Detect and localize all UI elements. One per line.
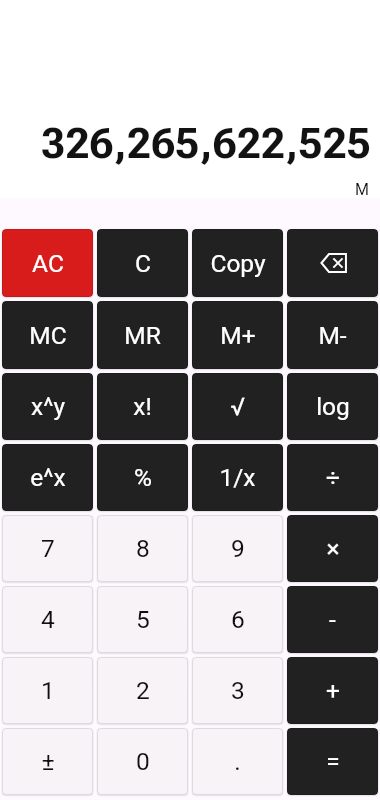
- button[interactable]: log: [287, 373, 378, 440]
- staticText: 8: [136, 534, 150, 563]
- button[interactable]: -: [287, 586, 378, 653]
- button[interactable]: ±: [2, 728, 93, 795]
- button[interactable]: MC: [2, 301, 93, 369]
- staticText: x!: [133, 392, 152, 421]
- button[interactable]: 3: [192, 657, 283, 724]
- staticText: %: [134, 463, 152, 492]
- staticText: 1/x: [219, 463, 256, 492]
- button[interactable]: 0: [97, 728, 188, 795]
- staticText: ±: [41, 747, 55, 776]
- staticText: 2: [136, 676, 150, 705]
- staticText: 0: [136, 747, 150, 776]
- button[interactable]: AC: [2, 229, 93, 297]
- staticText: 326,265,622,525: [0, 119, 371, 168]
- staticText: 7: [41, 534, 55, 563]
- button[interactable]: 2: [97, 657, 188, 724]
- staticText: .: [234, 747, 241, 776]
- button[interactable]: 7: [2, 515, 93, 582]
- button[interactable]: ÷: [287, 444, 378, 511]
- button[interactable]: =: [287, 728, 378, 795]
- staticText: ×: [326, 534, 340, 563]
- staticText: e^x: [30, 463, 66, 492]
- button[interactable]: Backspace: [287, 229, 378, 297]
- button[interactable]: 5: [97, 586, 188, 653]
- button[interactable]: +: [287, 657, 378, 724]
- staticText: Copy: [210, 249, 266, 278]
- staticText: M: [0, 180, 369, 199]
- button[interactable]: MR: [97, 301, 188, 369]
- staticText: M-: [318, 321, 347, 350]
- button[interactable]: Copy: [192, 229, 283, 297]
- button[interactable]: e^x: [2, 444, 93, 511]
- staticText: -: [329, 605, 336, 634]
- other: Backspace: [287, 229, 378, 297]
- staticText: log: [316, 392, 350, 421]
- button[interactable]: √: [192, 373, 283, 440]
- staticText: AC: [32, 249, 64, 278]
- staticText: 1: [41, 676, 55, 705]
- button[interactable]: M+: [192, 301, 283, 369]
- staticText: MR: [124, 321, 161, 350]
- button[interactable]: 1: [2, 657, 93, 724]
- staticText: =: [326, 747, 340, 776]
- button[interactable]: M-: [287, 301, 378, 369]
- staticText: 5: [136, 605, 150, 634]
- button[interactable]: 1/x: [192, 444, 283, 511]
- button[interactable]: x^y: [2, 373, 93, 440]
- button[interactable]: 4: [2, 586, 93, 653]
- button[interactable]: 6: [192, 586, 283, 653]
- button[interactable]: x!: [97, 373, 188, 440]
- staticText: 9: [231, 534, 245, 563]
- staticText: 6: [231, 605, 245, 634]
- button[interactable]: 9: [192, 515, 283, 582]
- staticText: 4: [41, 605, 55, 634]
- button[interactable]: C: [97, 229, 188, 297]
- staticText: x^y: [31, 392, 65, 421]
- button[interactable]: .: [192, 728, 283, 795]
- staticText: C: [135, 249, 151, 278]
- staticText: M+: [220, 321, 256, 350]
- staticText: +: [326, 676, 340, 705]
- staticText: MC: [29, 321, 67, 350]
- staticText: ÷: [326, 463, 340, 492]
- button[interactable]: ×: [287, 515, 378, 582]
- staticText: √: [230, 392, 245, 421]
- staticText: 3: [231, 676, 245, 705]
- button[interactable]: 8: [97, 515, 188, 582]
- button[interactable]: %: [97, 444, 188, 511]
